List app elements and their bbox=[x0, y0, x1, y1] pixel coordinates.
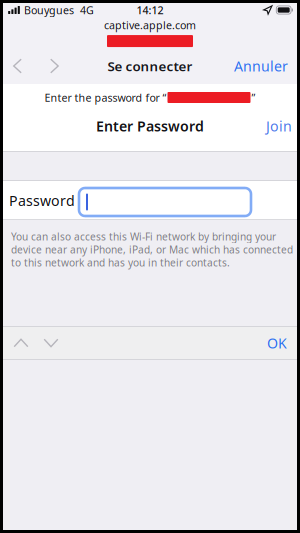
staticText: Enter Password bbox=[96, 117, 204, 135]
button[interactable]: Annuler bbox=[229, 50, 293, 82]
staticText: ” bbox=[251, 90, 255, 105]
staticText: Password bbox=[9, 191, 75, 210]
staticText: device near any iPhone, iPad, or Mac whi… bbox=[11, 243, 293, 256]
button[interactable]: Join bbox=[261, 111, 297, 141]
button[interactable]: Forward bbox=[36, 50, 73, 82]
button[interactable]: Previous field bbox=[6, 326, 36, 360]
staticText: 14:12 bbox=[136, 3, 163, 17]
button[interactable]: OK bbox=[262, 326, 292, 360]
staticText: Join bbox=[266, 117, 292, 135]
staticText: OK bbox=[267, 334, 287, 352]
button[interactable]: captive.apple.com bbox=[104, 18, 196, 32]
staticText: You can also access this Wi-Fi network b… bbox=[11, 230, 276, 243]
staticText: captive.apple.com bbox=[104, 18, 196, 32]
button[interactable]: Next field bbox=[36, 326, 66, 360]
staticText: Enter the password for “ bbox=[44, 90, 166, 105]
button[interactable]: Password bbox=[79, 188, 251, 216]
staticText: 4G bbox=[80, 3, 94, 17]
staticText: Bouygues bbox=[24, 3, 74, 17]
staticText: Annuler bbox=[234, 57, 288, 75]
button[interactable]: Back bbox=[0, 50, 36, 82]
staticText: to this network and has you in their con… bbox=[11, 256, 230, 269]
staticText: Se connecter bbox=[107, 57, 192, 75]
